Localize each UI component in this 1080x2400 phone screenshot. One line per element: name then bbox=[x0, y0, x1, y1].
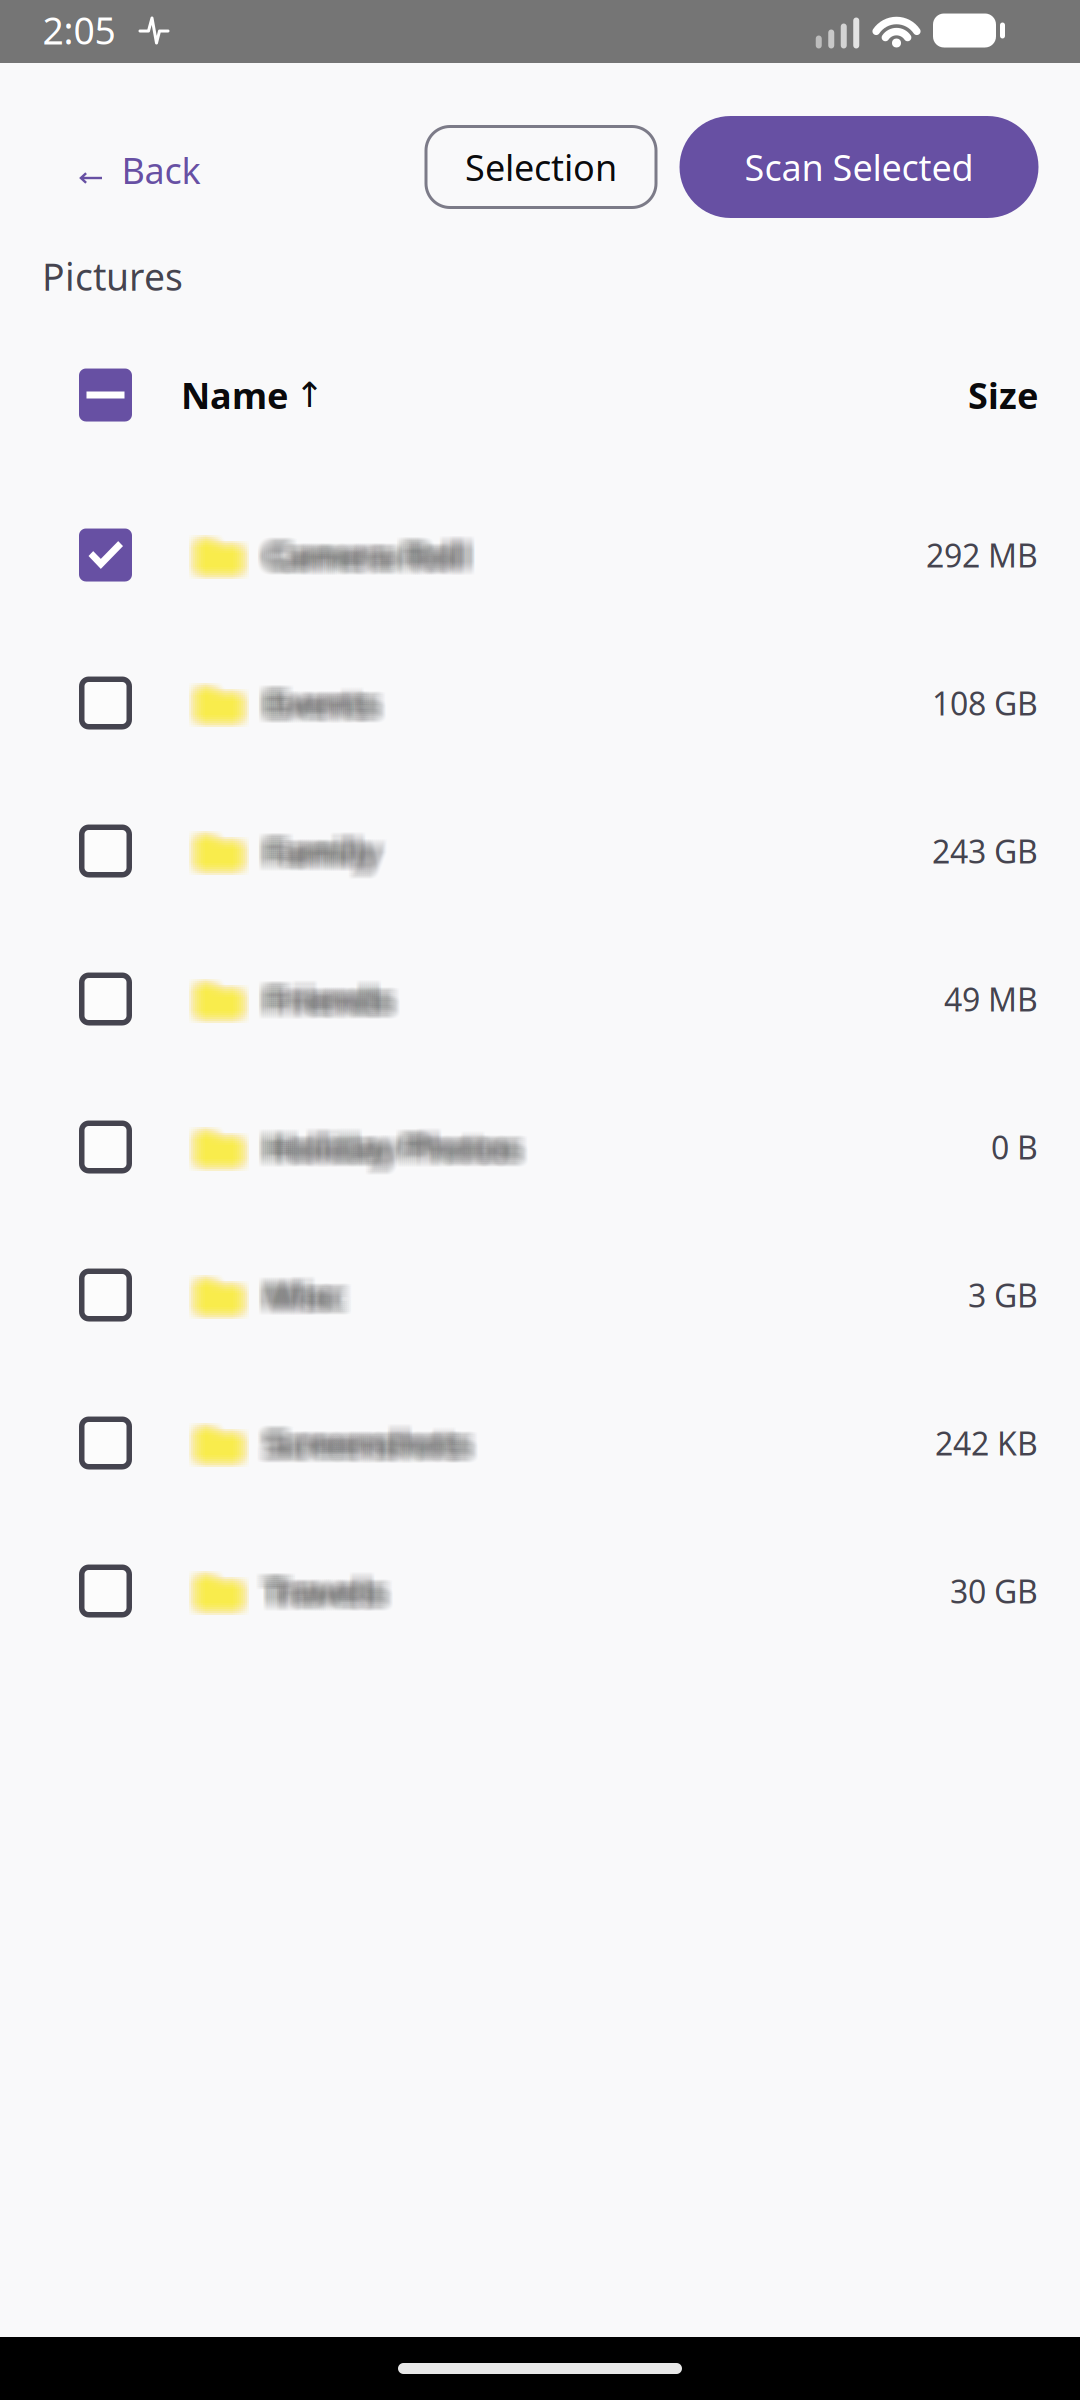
staticText: Events bbox=[262, 686, 373, 732]
staticText: Screenshots bbox=[272, 1424, 475, 1470]
staticText: Camera Roll bbox=[266, 534, 467, 580]
staticText: Travels bbox=[268, 1572, 386, 1618]
staticText: Misc bbox=[262, 1274, 338, 1320]
staticText: Events bbox=[268, 682, 379, 728]
staticText: Friends bbox=[256, 974, 381, 1020]
staticText: Travels bbox=[274, 1570, 392, 1616]
staticText: Screenshots bbox=[276, 1418, 479, 1464]
staticText: Travels bbox=[262, 1572, 380, 1618]
button[interactable]: Misc bbox=[0, 1221, 1080, 1369]
staticText: Holiday Photos bbox=[276, 1128, 529, 1174]
staticText: Travels bbox=[266, 1574, 384, 1620]
staticText: Holiday Photos bbox=[276, 1122, 529, 1168]
staticText: Events bbox=[274, 680, 385, 726]
staticText: Screenshots bbox=[274, 1416, 477, 1462]
staticText: Camera Roll bbox=[270, 528, 471, 574]
staticText: Events bbox=[270, 684, 381, 730]
staticText: Holiday Photos bbox=[276, 1124, 529, 1170]
staticText: Screenshots bbox=[276, 1426, 479, 1472]
staticText: Camera Roll bbox=[274, 530, 475, 576]
staticText: Friends bbox=[270, 974, 395, 1020]
button[interactable]: Back bbox=[57, 122, 222, 218]
staticText: Camera Roll bbox=[266, 526, 467, 572]
staticText: Friends bbox=[256, 970, 381, 1016]
staticText: Friends bbox=[266, 978, 391, 1024]
staticText: Holiday Photos bbox=[262, 1120, 515, 1166]
staticText: 2:05 bbox=[42, 5, 115, 55]
staticText: Screenshots bbox=[272, 1414, 475, 1460]
staticText: Friends bbox=[264, 976, 389, 1022]
staticText: Screenshots bbox=[262, 1420, 465, 1466]
button[interactable]: Events bbox=[0, 629, 1080, 777]
staticText: Holiday Photos bbox=[274, 1126, 527, 1172]
staticText: Screenshots bbox=[260, 1414, 463, 1460]
staticText: Camera Roll bbox=[268, 536, 469, 582]
staticText: Misc bbox=[276, 1272, 352, 1318]
staticText: Travels bbox=[270, 1570, 388, 1616]
staticText: Family bbox=[270, 822, 381, 868]
staticText: Family bbox=[260, 824, 371, 870]
staticText: Holiday Photos bbox=[272, 1124, 525, 1170]
staticText: Screenshots bbox=[256, 1426, 459, 1472]
staticText: Holiday Photos bbox=[272, 1126, 525, 1172]
staticText: Family bbox=[272, 822, 383, 868]
staticText: Events bbox=[260, 678, 371, 724]
staticText: Family bbox=[262, 834, 373, 880]
staticText: Family bbox=[264, 826, 375, 872]
staticText: Holiday Photos bbox=[262, 1122, 515, 1168]
staticText: Travels bbox=[258, 1564, 376, 1610]
staticText: Family bbox=[258, 822, 369, 868]
staticText: Holiday Photos bbox=[270, 1128, 523, 1174]
staticText: Events bbox=[268, 680, 379, 726]
staticText: 292 MB bbox=[926, 534, 1038, 576]
staticText: Travels bbox=[262, 1574, 380, 1620]
staticText: Misc bbox=[276, 1276, 352, 1322]
staticText: Events bbox=[276, 680, 387, 726]
staticText: Family bbox=[276, 822, 387, 868]
staticText: Screenshots bbox=[260, 1426, 463, 1472]
staticText: Events bbox=[264, 682, 375, 728]
staticText: Misc bbox=[268, 1276, 344, 1322]
staticText: Friends bbox=[268, 970, 393, 1016]
staticText: Travels bbox=[266, 1572, 384, 1618]
staticText: Misc bbox=[270, 1274, 346, 1320]
staticText: Camera Roll bbox=[276, 536, 477, 582]
staticText: Friends bbox=[270, 972, 395, 1018]
staticText: Screenshots bbox=[264, 1420, 467, 1466]
staticText: Screenshots bbox=[264, 1414, 467, 1460]
staticText: Misc bbox=[266, 1266, 342, 1312]
staticText: Travels bbox=[270, 1572, 388, 1618]
staticText: Screenshots bbox=[266, 1416, 469, 1462]
staticText: Friends bbox=[272, 982, 397, 1028]
staticText: Camera Roll bbox=[268, 528, 469, 574]
button[interactable]: Camera Roll bbox=[0, 481, 1080, 629]
staticText: Travels bbox=[260, 1566, 378, 1612]
staticText: Events bbox=[256, 674, 367, 720]
button[interactable]: Name bbox=[181, 371, 324, 419]
staticText: Travels bbox=[268, 1568, 386, 1614]
button[interactable]: Scan Selected bbox=[679, 116, 1038, 218]
button[interactable]: Travels bbox=[0, 1517, 1080, 1665]
staticText: Family bbox=[270, 834, 381, 880]
button[interactable]: Family bbox=[0, 777, 1080, 925]
staticText: Camera Roll bbox=[264, 528, 465, 574]
button[interactable]: Select all bbox=[79, 368, 132, 421]
button[interactable]: Holiday Photos bbox=[0, 1073, 1080, 1221]
staticText: Friends bbox=[274, 974, 399, 1020]
staticText: Travels bbox=[262, 1568, 380, 1614]
staticText: Friends bbox=[274, 980, 399, 1026]
staticText: Travels bbox=[260, 1562, 378, 1608]
staticText: Screenshots bbox=[258, 1414, 461, 1460]
staticText: Family bbox=[274, 830, 385, 876]
staticText: Misc bbox=[276, 1270, 352, 1316]
staticText: Camera Roll bbox=[260, 536, 461, 582]
staticText: Events bbox=[272, 682, 383, 728]
button[interactable]: Selection bbox=[426, 126, 656, 207]
staticText: Travels bbox=[266, 1566, 384, 1612]
staticText: Travels bbox=[258, 1570, 376, 1616]
button[interactable]: Friends bbox=[0, 925, 1080, 1073]
staticText: Holiday Photos bbox=[266, 1128, 519, 1174]
staticText: Friends bbox=[256, 972, 381, 1018]
button[interactable]: Screenshots bbox=[0, 1369, 1080, 1517]
staticText: Friends bbox=[276, 978, 401, 1024]
